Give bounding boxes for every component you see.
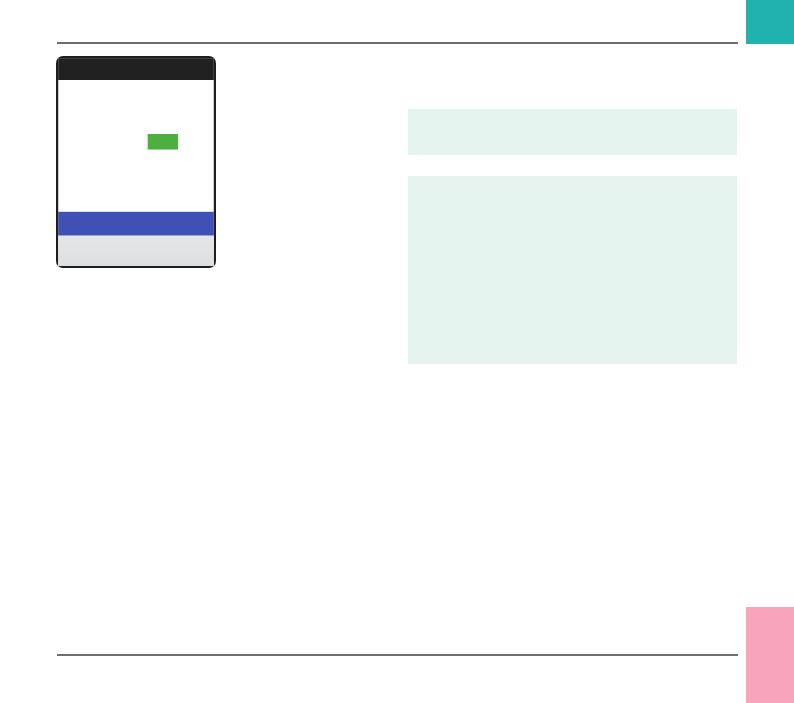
button[interactable]: Phone screen preview [56,56,216,268]
